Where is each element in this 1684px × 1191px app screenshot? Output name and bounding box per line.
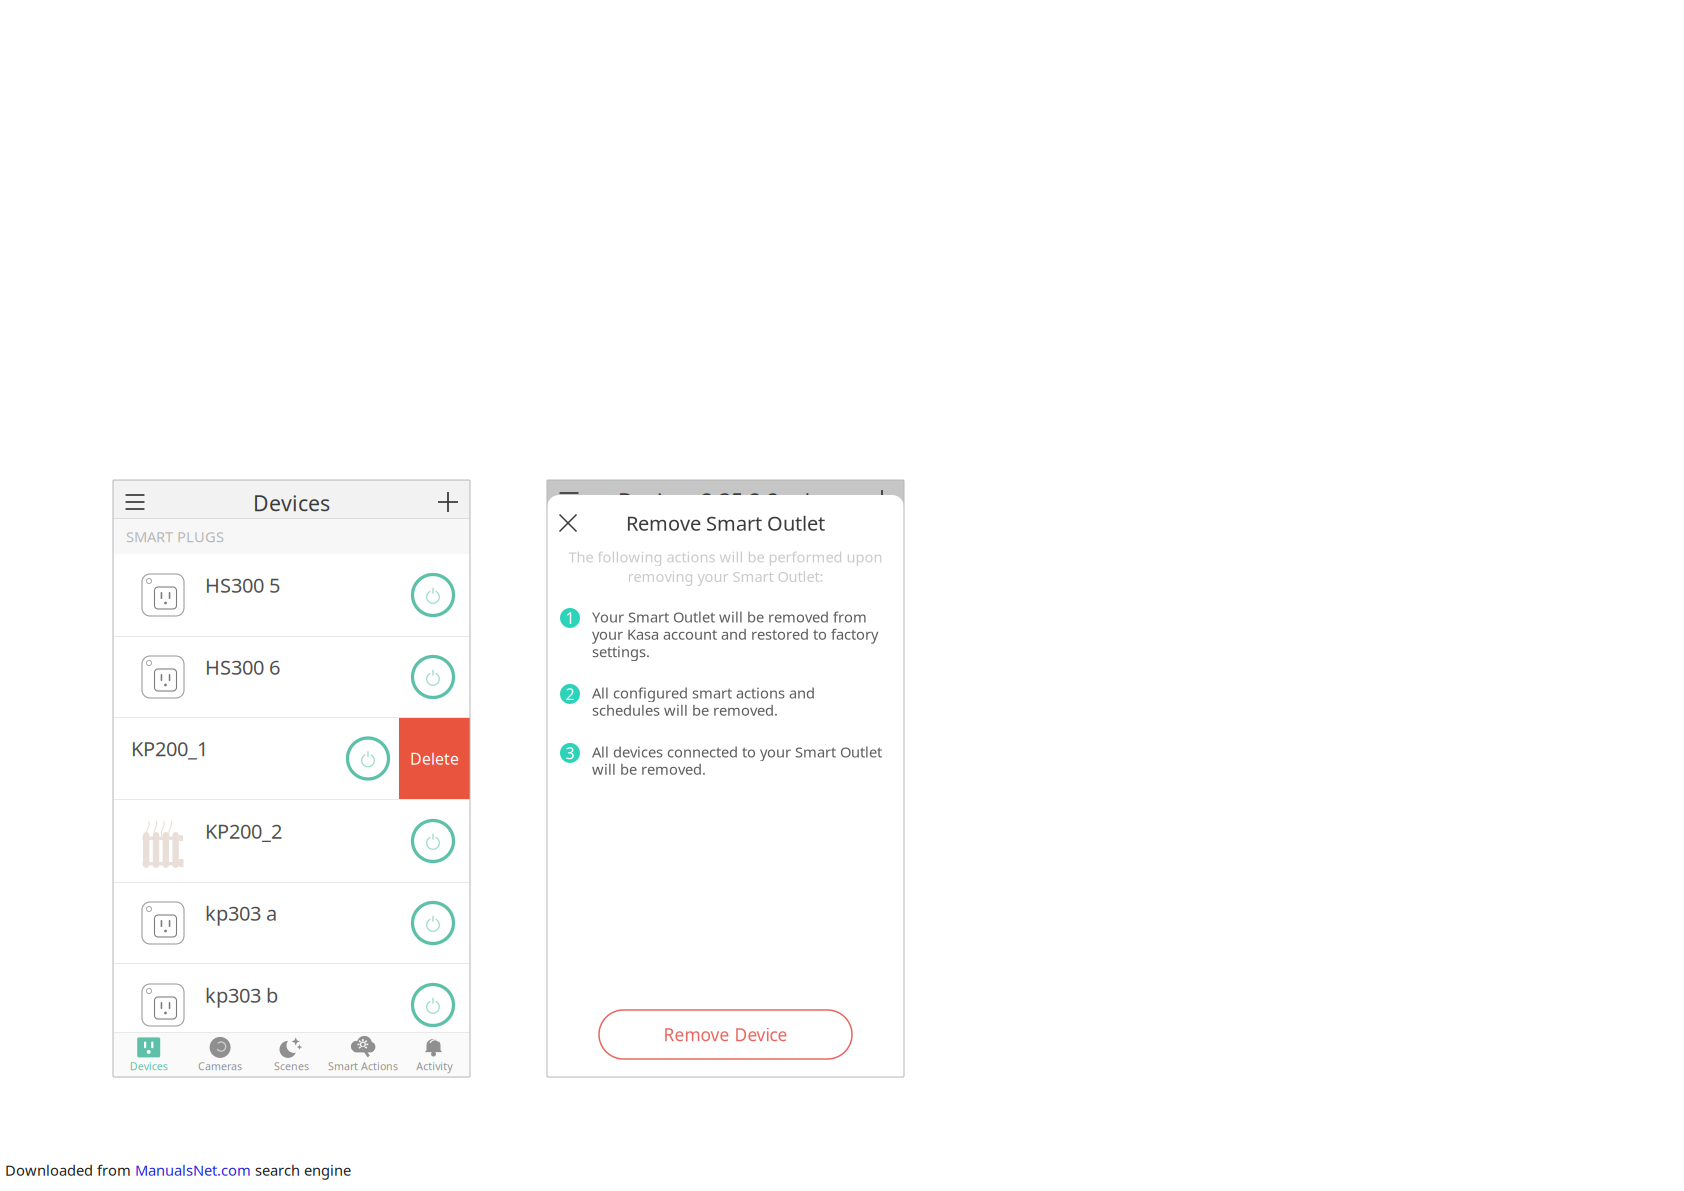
button[interactable]: KP200_1 [113,718,399,799]
button[interactable]: HS300 6 [113,637,470,717]
button[interactable]: Remove Device [599,1010,852,1059]
button[interactable]: Devices [113,1033,184,1077]
staticText: kp303 b [205,982,278,1008]
staticText: HS300 5 [205,572,280,598]
staticText: Remove Device [663,1023,787,1046]
button[interactable]: Power [410,572,456,618]
staticText: 2 [565,683,574,704]
button[interactable]: KP200_2 [113,800,470,882]
button[interactable]: Power [410,982,456,1028]
staticText: All devices connected to your Smart Outl… [592,742,882,779]
staticText: removing your Smart Outlet: [627,566,823,586]
staticText: Activity [416,1059,452,1073]
button[interactable]: Add device [427,483,469,521]
staticText: ManualsNet.com [135,1160,251,1180]
staticText: 3 [565,742,574,763]
staticText: kp303 a [205,900,277,926]
staticText: HS300 6 [205,654,280,680]
staticText: All configured smart actions and schedul… [592,683,815,720]
staticText: Remove Smart Outlet [626,510,825,536]
staticText: Devices [253,489,330,517]
staticText: KP200_2 [205,818,282,844]
button[interactable]: Delete [399,718,470,799]
button[interactable]: HS300 5 [113,554,470,636]
staticText: Downloaded from [5,1160,135,1180]
button[interactable]: Power [410,654,456,700]
button[interactable]: Cameras [184,1033,256,1077]
staticText: Cameras [198,1059,242,1073]
staticText: 1 [565,607,574,628]
staticText: KP200_1 [131,735,208,762]
button[interactable]: Scenes [256,1033,327,1077]
staticText: Scenes [274,1059,309,1073]
button[interactable]: Power [410,900,456,946]
button[interactable]: Menu [114,483,156,521]
button[interactable]: Power [345,735,391,781]
button[interactable]: kp303 b [113,964,470,1046]
staticText: Devices 2.35.2.2 dev [618,487,833,515]
button[interactable]: Close [548,502,588,544]
button[interactable]: Activity [399,1033,470,1077]
staticText: Devices [130,1059,168,1073]
staticText: The following actions will be performed … [568,547,882,566]
staticText: Delete [410,748,459,769]
staticText: Smart Actions [328,1059,398,1073]
staticText: search engine [251,1160,351,1180]
button[interactable]: Power [410,818,456,864]
staticText: Your Smart Outlet will be removed from y… [592,607,878,661]
button[interactable]: kp303 a [113,883,470,963]
button[interactable]: Smart Actions [327,1033,399,1077]
staticText: SMART PLUGS [126,527,224,546]
